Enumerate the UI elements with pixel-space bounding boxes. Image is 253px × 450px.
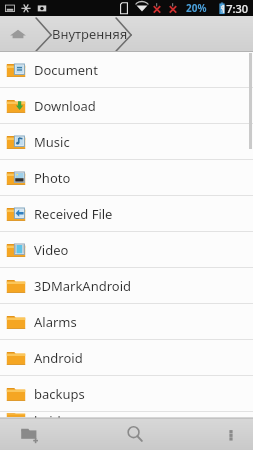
staticText: Video: [34, 241, 69, 259]
staticText: Photo: [34, 169, 71, 187]
staticText: 3DMarkAndroid: [34, 277, 131, 295]
staticText: Document: [34, 61, 98, 79]
staticText: 17:30: [220, 1, 249, 16]
button[interactable]: More options: [209, 418, 253, 450]
button[interactable]: Received File: [0, 196, 253, 231]
staticText: backups: [34, 385, 85, 403]
button[interactable]: Home: [0, 16, 36, 52]
button[interactable]: Document: [0, 52, 253, 87]
button[interactable]: Photo: [0, 160, 253, 195]
button[interactable]: Alarms: [0, 304, 253, 339]
staticText: baidu: [34, 412, 69, 418]
button[interactable]: Download: [0, 88, 253, 123]
button[interactable]: Video: [0, 232, 253, 267]
button[interactable]: baidu: [0, 412, 253, 418]
staticText: Download: [34, 97, 96, 115]
button[interactable]: Внутренняя: [52, 16, 128, 52]
staticText: Android: [34, 349, 83, 367]
button[interactable]: New folder: [0, 418, 60, 450]
staticText: 20%: [186, 1, 207, 15]
button[interactable]: Music: [0, 124, 253, 159]
button[interactable]: Android: [0, 340, 253, 375]
button[interactable]: backups: [0, 376, 253, 411]
staticText: Alarms: [34, 313, 77, 331]
staticText: Music: [34, 133, 70, 151]
staticText: Received File: [34, 205, 113, 223]
button[interactable]: 3DMarkAndroid: [0, 268, 253, 303]
staticText: Внутренняя: [52, 25, 128, 43]
button[interactable]: Search: [61, 418, 209, 450]
